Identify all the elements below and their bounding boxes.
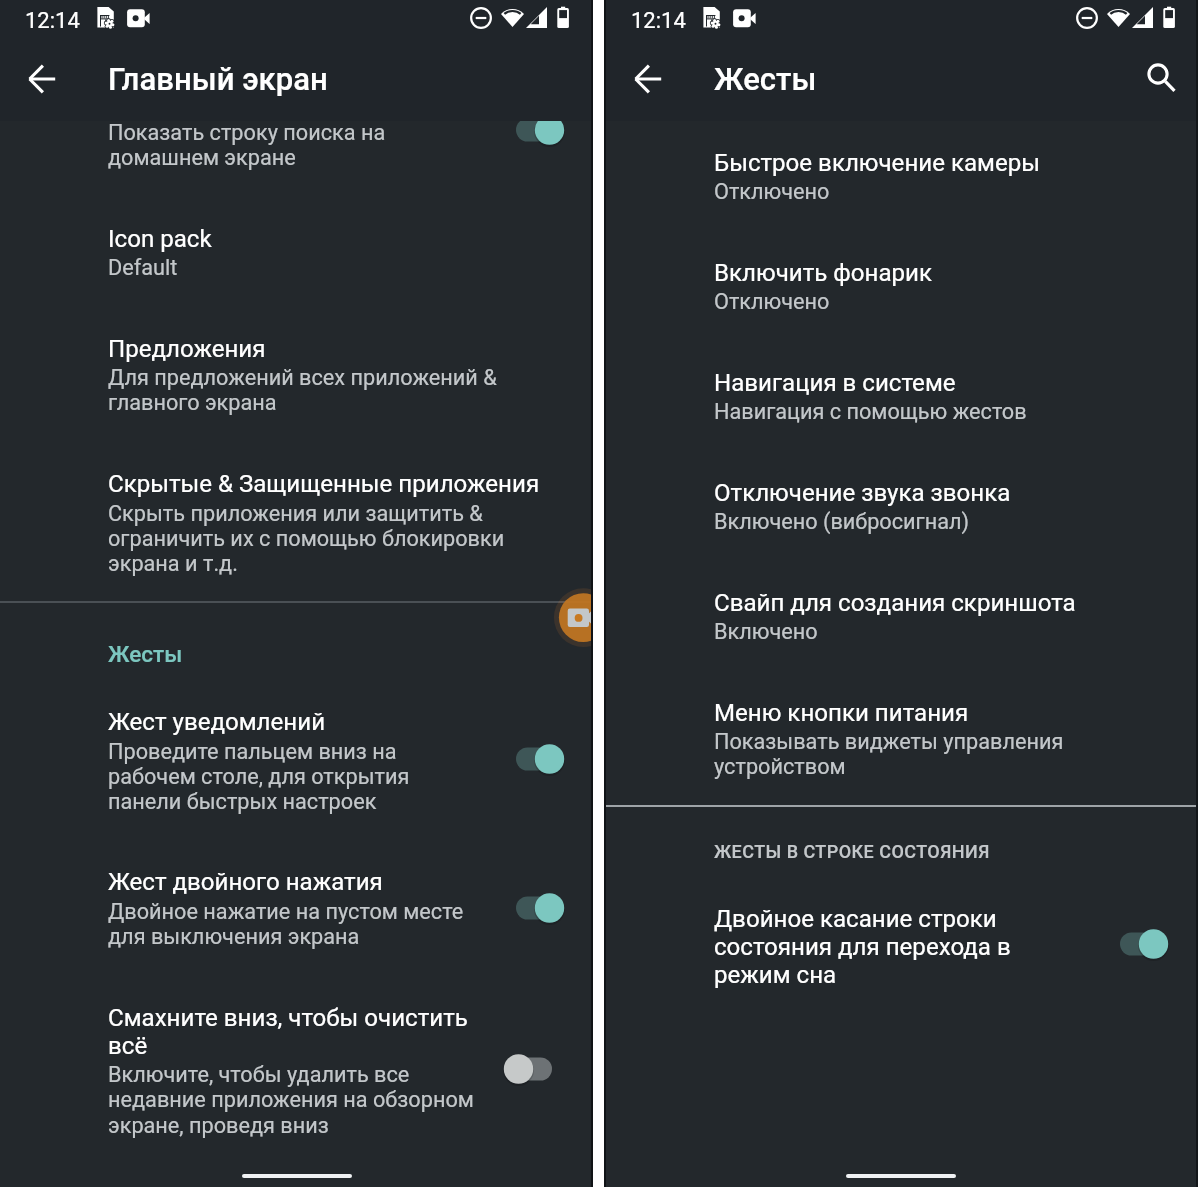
button[interactable] [606,572,1196,662]
button[interactable]: Switch on [506,735,574,783]
button[interactable] [0,688,591,832]
staticText: главного экрана [108,390,277,415]
button[interactable]: Home [846,1174,956,1178]
staticText: Навигация с помощью жестов [714,399,1027,424]
staticText: панели быстрых настроек [108,789,377,814]
staticText: Включено (вибросигнал) [714,509,970,534]
staticText: Отключено [714,179,830,204]
button[interactable]: Back [18,54,68,104]
staticText: режим сна [714,961,837,989]
staticText: Показать строку поиска на [108,121,386,145]
staticText: домашнем экране [108,145,296,170]
staticText: Включено [714,619,818,644]
button[interactable] [606,882,1196,1000]
staticText: рабочем столе, для открытия [108,764,410,789]
staticText: 12:14 [25,8,80,34]
staticText: экране, проведя вниз [108,1113,329,1138]
staticText: Предложения [108,335,266,363]
staticText: Меню кнопки питания [714,699,969,727]
staticText: Двойное нажатие на пустом месте [108,899,464,924]
button[interactable]: Switch on [506,121,574,154]
button[interactable] [606,242,1196,332]
button[interactable] [606,352,1196,442]
staticText: Отключено [714,289,830,314]
staticText: Отключение звука звонка [714,479,1011,507]
staticText: Включить фонарик [714,259,932,287]
staticText: экрана и т.д. [108,551,238,576]
staticText: Для предложений всех приложений & [108,365,497,390]
staticText: Жест уведомлений [108,708,326,736]
staticText: Включите, чтобы удалить все [108,1062,410,1087]
button[interactable]: Switch off [494,1045,562,1093]
button[interactable] [0,203,591,303]
staticText: ограничить их с помощью блокировки [108,526,505,551]
button[interactable] [606,682,1196,798]
staticText: Главный экран [108,61,328,97]
button[interactable]: Switch on [506,884,574,932]
staticText: Показывать виджеты управления [714,729,1064,754]
button[interactable] [0,983,591,1153]
staticText: 12:14 [631,8,686,34]
staticText: всё [108,1032,148,1060]
button[interactable] [0,848,591,966]
button[interactable] [606,132,1196,222]
staticText: Быстрое включение камеры [714,149,1040,177]
staticText: Жесты [108,641,183,667]
staticText: недавние приложения на обзорном [108,1087,474,1112]
button[interactable]: Search [1133,49,1183,99]
staticText: Смахните вниз, чтобы очистить [108,1004,468,1032]
button[interactable] [0,313,591,440]
staticText: Default [108,255,178,280]
button[interactable]: Switch on [1110,920,1178,968]
staticText: Жесты [714,61,817,97]
staticText: устройством [714,754,846,779]
button[interactable] [0,121,591,203]
staticText: Скрыть приложения или защитить & [108,501,483,526]
staticText: Навигация в системе [714,369,956,397]
staticText: ЖЕСТЫ В СТРОКЕ СОСТОЯНИЯ [714,841,990,862]
staticText: Свайп для создания скриншота [714,589,1076,617]
staticText: Icon pack [108,225,212,253]
staticText: Жест двойного нажатия [108,868,383,896]
staticText: Двойное касание строки [714,905,997,933]
button[interactable]: Back [624,54,674,104]
button[interactable] [606,462,1196,552]
staticText: для выключения экрана [108,924,360,949]
button[interactable] [0,450,591,596]
staticText: Скрытые & Защищенные приложения [108,470,540,498]
staticText: состояния для перехода в [714,933,1011,961]
button[interactable]: Home [242,1174,352,1178]
staticText: Проведите пальцем вниз на [108,739,397,764]
